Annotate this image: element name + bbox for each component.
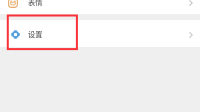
button[interactable]: 设置 (0, 20, 200, 47)
other: Open 设置 (188, 32, 194, 38)
staticText: 设置 (28, 29, 43, 39)
other: Open 表情 (188, 0, 194, 6)
button[interactable]: 表情 (0, 0, 200, 14)
staticText: 表情 (28, 0, 43, 7)
